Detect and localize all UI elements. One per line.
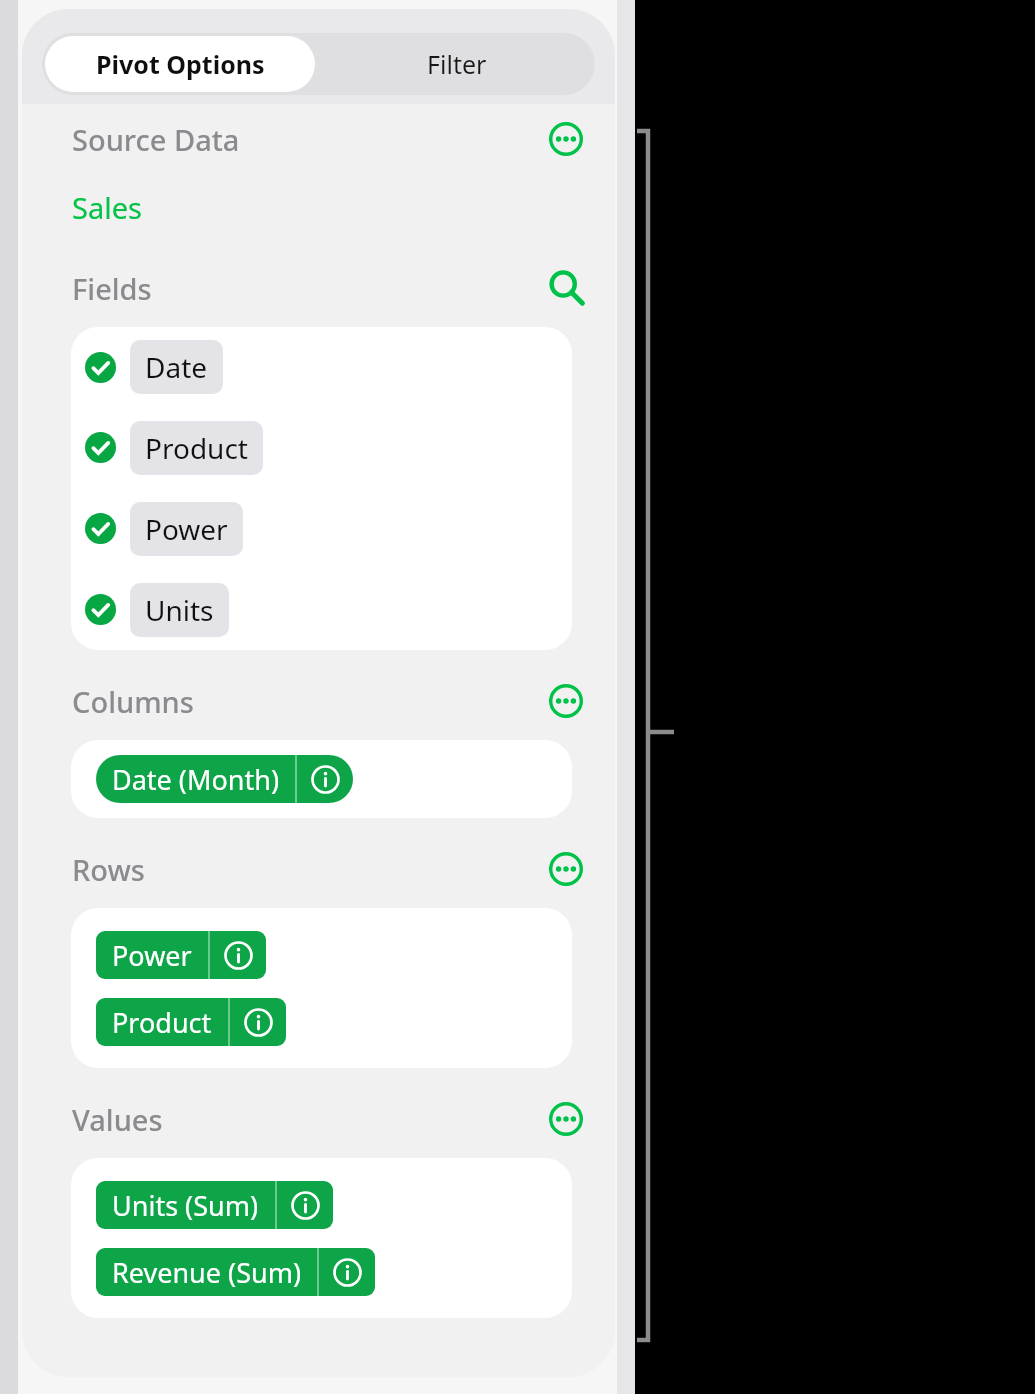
button[interactable]: Revenue (Sum) info xyxy=(319,1248,375,1296)
button[interactable]: Source Data options xyxy=(543,116,589,162)
button[interactable]: Power xyxy=(96,931,266,979)
button[interactable]: Date xyxy=(71,327,572,407)
button[interactable]: Units xyxy=(71,569,572,650)
staticText: Sales xyxy=(72,188,142,227)
staticText: Columns xyxy=(72,682,194,721)
button[interactable]: Units (Sum) info xyxy=(277,1181,333,1229)
staticText: Product xyxy=(145,429,248,467)
staticText: Values xyxy=(72,1100,163,1139)
button[interactable]: Product xyxy=(96,998,286,1046)
button[interactable]: Date (Month) info xyxy=(297,755,353,803)
staticText: Units (Sum) xyxy=(112,1187,259,1224)
button[interactable]: Pivot Options xyxy=(45,36,315,92)
staticText: Filter xyxy=(427,47,487,81)
button[interactable]: Filter xyxy=(318,33,595,95)
staticText: Rows xyxy=(72,850,145,889)
staticText: Pivot Options xyxy=(96,47,265,81)
staticText: Fields xyxy=(72,269,152,308)
button[interactable]: Product info xyxy=(230,998,286,1046)
button[interactable]: Date (Month) xyxy=(96,755,353,803)
staticText: Power xyxy=(112,937,192,974)
staticText: Units xyxy=(145,591,214,629)
button[interactable]: Power info xyxy=(210,931,266,979)
button[interactable]: Values options xyxy=(543,1096,589,1142)
button[interactable]: Product xyxy=(71,407,572,488)
staticText: Date (Month) xyxy=(112,761,279,798)
staticText: Date xyxy=(145,348,208,386)
button[interactable]: Units (Sum) xyxy=(96,1181,333,1229)
staticText: Source Data xyxy=(72,120,240,159)
button[interactable]: Revenue (Sum) xyxy=(96,1248,375,1296)
button[interactable]: Rows options xyxy=(543,846,589,892)
staticText: Product xyxy=(112,1004,212,1041)
button[interactable]: Search fields xyxy=(543,265,589,311)
button[interactable]: Power xyxy=(71,488,572,569)
button[interactable]: Columns options xyxy=(543,678,589,724)
staticText: Revenue (Sum) xyxy=(112,1254,301,1291)
staticText: Power xyxy=(145,510,228,548)
